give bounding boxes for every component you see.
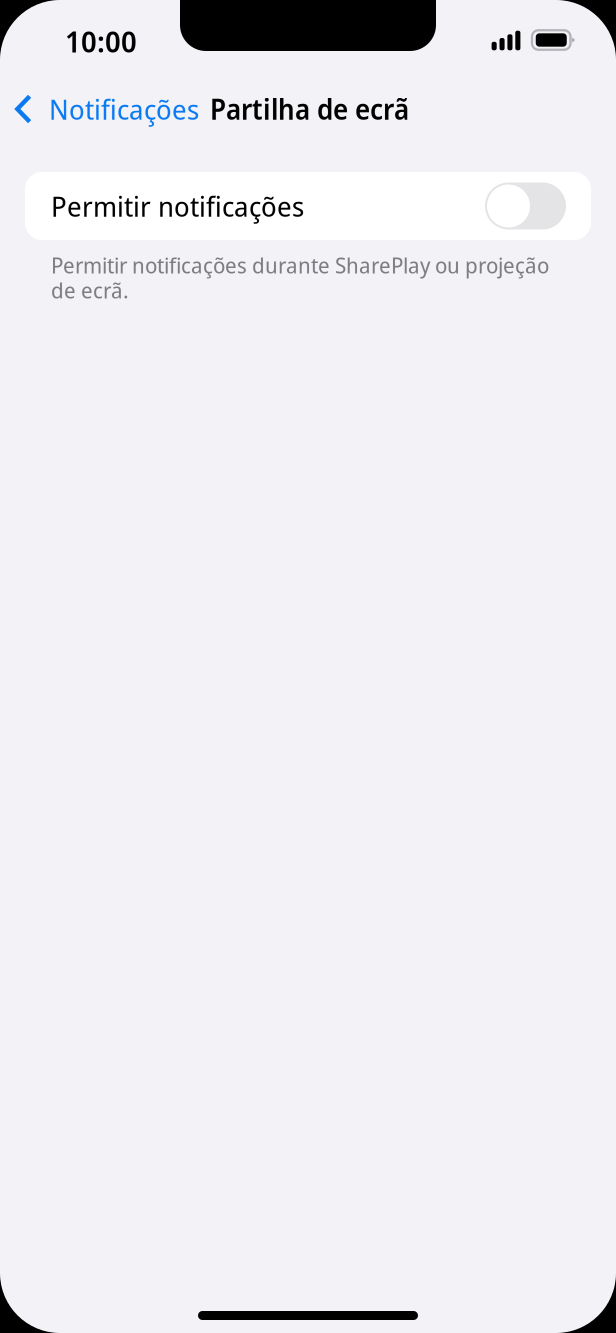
staticText: Permitir notificações durante SharePlay … (51, 250, 549, 280)
button[interactable]: Permitir notificações (25, 172, 591, 240)
staticText: Partilha de ecrã (210, 90, 409, 128)
staticText: Permitir notificações (51, 187, 304, 225)
staticText: Notificações (49, 90, 199, 128)
staticText: 10:00 (65, 21, 137, 61)
staticText: de ecrã. (51, 275, 129, 305)
button[interactable]: Notificações (1, 84, 213, 134)
